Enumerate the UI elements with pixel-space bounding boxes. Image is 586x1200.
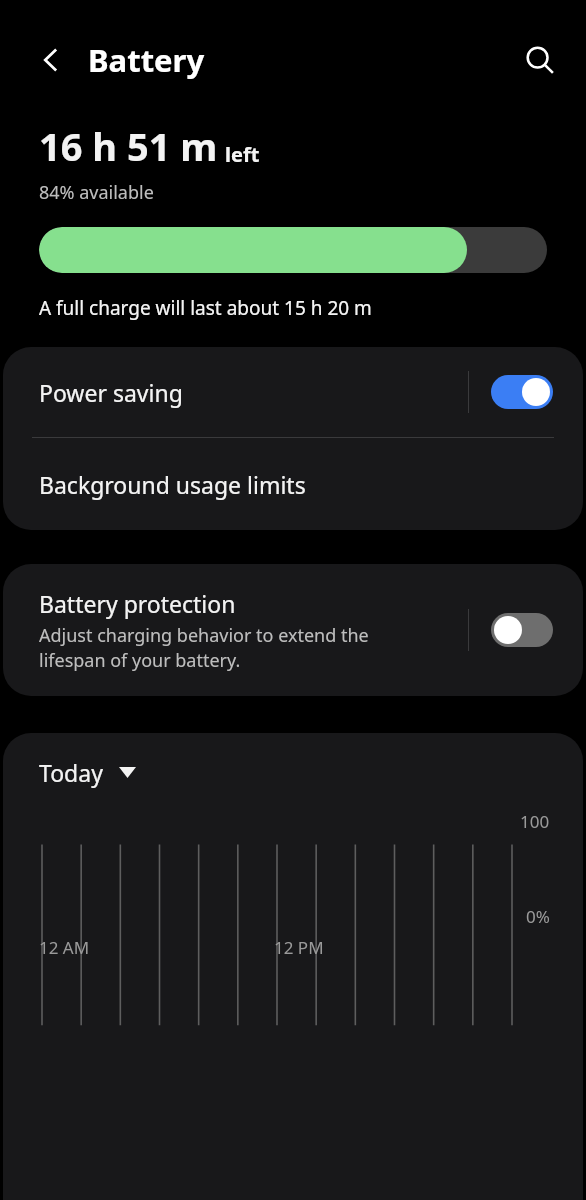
staticText: 84% available: [39, 180, 154, 205]
button[interactable]: Today: [39, 757, 136, 788]
staticText: 0%: [526, 905, 550, 928]
staticText: 100: [520, 810, 550, 833]
staticText: Battery: [88, 39, 205, 81]
button[interactable]: Battery protection toggle: [491, 613, 553, 647]
button[interactable]: Power saving: [3, 347, 583, 437]
staticText: Today: [39, 757, 103, 788]
button[interactable]: Power saving toggle: [491, 375, 553, 409]
staticText: left: [225, 141, 260, 168]
staticText: 12 AM: [39, 936, 90, 959]
button[interactable]: Battery protection: [3, 564, 583, 696]
staticText: 12 PM: [274, 936, 324, 959]
staticText: lifespan of your battery.: [39, 648, 241, 673]
staticText: Battery protection: [39, 588, 236, 619]
staticText: Background usage limits: [39, 469, 306, 500]
button[interactable]: Back: [24, 32, 80, 88]
staticText: 16 h 51 m: [39, 120, 218, 172]
button[interactable]: Search: [512, 32, 568, 88]
staticText: Adjust charging behavior to extend the: [39, 623, 369, 648]
staticText: Power saving: [39, 377, 468, 408]
staticText: A full charge will last about 15 h 20 m: [39, 295, 372, 321]
button[interactable]: Background usage limits: [3, 438, 583, 530]
